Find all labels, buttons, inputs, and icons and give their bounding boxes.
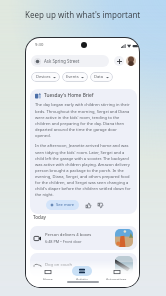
staticText: Dog on couch [45,262,73,268]
staticText: Tuesday's Home Brief [44,92,94,99]
button[interactable]: Person delivers 4 boxes [30,226,137,250]
button[interactable]: Automations [104,264,129,282]
button[interactable]: Add device [114,56,124,66]
staticText: Keep up with what's important [25,9,141,20]
staticText: Data [94,74,104,80]
staticText: 9:30 [35,42,44,48]
button[interactable]: Home [36,264,60,282]
staticText: Person delivers 4 boxes [45,232,92,238]
button[interactable]: Thumbs up [84,201,93,210]
staticText: 6:48 PM • Front door [45,239,82,244]
button[interactable]: Profile [126,56,136,66]
button[interactable]: Activity [70,264,94,282]
staticText: Today [33,214,46,220]
staticText: See more [56,202,75,208]
staticText: Automations [106,277,127,280]
staticText: Devices [36,74,51,80]
button[interactable]: Ask Spring Street [31,55,109,67]
button[interactable]: Devices [31,72,60,82]
staticText: The day began early with children stirri… [35,102,132,138]
button[interactable]: Events [62,72,88,82]
button[interactable]: Dog on couch [30,253,137,277]
button[interactable]: Data [90,72,113,82]
button[interactable]: Thumbs down [96,201,105,210]
staticText: In the afternoon, Jeanette arrived home … [35,143,132,197]
staticText: Events [66,74,79,80]
staticText: Activity [76,277,88,280]
button[interactable]: See more [46,200,79,210]
staticText: Ask Spring Street [44,58,80,64]
staticText: Home [43,277,53,280]
